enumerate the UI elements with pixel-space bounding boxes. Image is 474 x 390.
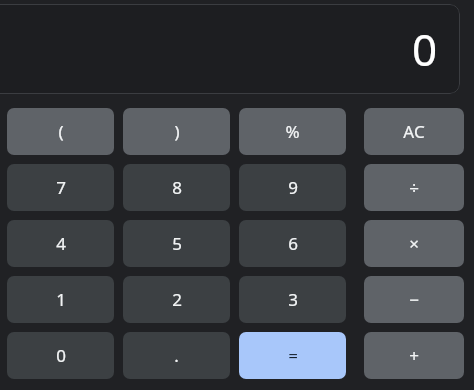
staticText: ÷ bbox=[409, 176, 419, 199]
button[interactable]: Percent bbox=[239, 108, 346, 155]
button[interactable]: Eight bbox=[123, 164, 230, 211]
staticText: % bbox=[285, 120, 300, 143]
button[interactable]: Four bbox=[7, 220, 114, 267]
staticText: 5 bbox=[172, 232, 182, 255]
staticText: 7 bbox=[56, 176, 66, 199]
button[interactable]: Seven bbox=[7, 164, 114, 211]
button[interactable]: Close parenthesis bbox=[123, 108, 230, 155]
button[interactable]: Decimal point bbox=[123, 332, 230, 379]
staticText: 9 bbox=[288, 176, 298, 199]
button[interactable]: Five bbox=[123, 220, 230, 267]
button[interactable]: Six bbox=[239, 220, 346, 267]
staticText: − bbox=[409, 288, 419, 311]
staticText: ( bbox=[58, 120, 64, 143]
staticText: AC bbox=[403, 120, 425, 143]
staticText: 2 bbox=[172, 288, 182, 311]
staticText: 0 bbox=[56, 344, 66, 367]
staticText: = bbox=[288, 344, 298, 367]
staticText: 3 bbox=[288, 288, 298, 311]
button[interactable]: Two bbox=[123, 276, 230, 323]
button[interactable]: Three bbox=[239, 276, 346, 323]
staticText: + bbox=[409, 344, 419, 367]
button[interactable]: Nine bbox=[239, 164, 346, 211]
button[interactable]: Equals bbox=[239, 332, 346, 379]
staticText: × bbox=[409, 232, 419, 255]
staticText: 6 bbox=[288, 232, 298, 255]
button[interactable]: All clear bbox=[364, 108, 464, 155]
button[interactable]: Add bbox=[364, 332, 464, 379]
staticText: 8 bbox=[172, 176, 182, 199]
staticText: 4 bbox=[56, 232, 66, 255]
staticText: . bbox=[174, 344, 179, 367]
button[interactable]: Multiply bbox=[364, 220, 464, 267]
button[interactable]: Subtract bbox=[364, 276, 464, 323]
button[interactable]: Zero bbox=[7, 332, 114, 379]
button[interactable]: Divide bbox=[364, 164, 464, 211]
staticText: 1 bbox=[56, 288, 66, 311]
button[interactable]: Open parenthesis bbox=[7, 108, 114, 155]
staticText: 0 bbox=[412, 19, 438, 79]
button[interactable]: One bbox=[7, 276, 114, 323]
staticText: ) bbox=[174, 120, 180, 143]
